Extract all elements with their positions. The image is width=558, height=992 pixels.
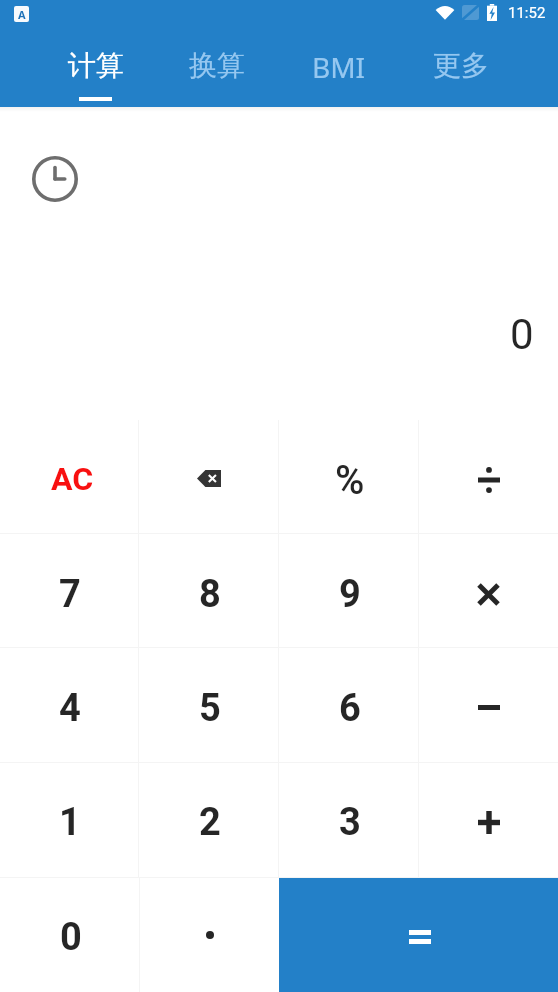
staticText: A [18,7,26,22]
button[interactable]: 6 [279,648,418,762]
button[interactable]: % [279,420,418,533]
staticText: BMI [312,48,366,86]
button[interactable]: 5 [139,648,278,762]
button[interactable]: AC [0,420,138,533]
button[interactable]: Divide [419,420,558,533]
staticText: 更多 [433,48,489,83]
staticText: 0 [510,310,534,359]
button[interactable]: BMI [278,26,400,107]
button[interactable]: History [32,156,78,202]
staticText: % [335,457,365,504]
button[interactable]: 0 [0,878,139,992]
staticText: 5 [199,686,221,731]
button[interactable]: 9 [279,534,418,647]
button[interactable]: 更多 [400,26,522,107]
button[interactable]: 8 [139,534,278,647]
staticText: AC [51,460,94,498]
staticText: 6 [339,686,361,731]
staticText: 计算 [68,48,124,83]
button[interactable]: 2 [139,763,278,877]
button[interactable]: Plus [419,763,558,877]
staticText: 7 [59,572,81,617]
button[interactable]: 3 [279,763,418,877]
button[interactable]: Equals [279,878,558,992]
button[interactable]: Minus [419,648,558,762]
staticText: 换算 [189,48,245,83]
button[interactable]: 4 [0,648,138,762]
button[interactable]: Backspace [139,420,278,533]
staticText: 1 [59,800,81,845]
staticText: 11:52 [508,4,546,22]
staticText: 0 [60,915,82,960]
button[interactable]: 换算 [156,26,278,107]
staticText: 8 [199,572,221,617]
staticText: 4 [59,686,81,731]
button[interactable]: 7 [0,534,138,647]
button[interactable]: 计算 [35,26,156,107]
staticText: 9 [339,572,361,617]
button[interactable]: Decimal point [140,878,279,992]
button[interactable]: 1 [0,763,138,877]
button[interactable]: Multiply [419,534,558,647]
staticText: 3 [339,800,361,845]
staticText: 2 [199,800,221,845]
